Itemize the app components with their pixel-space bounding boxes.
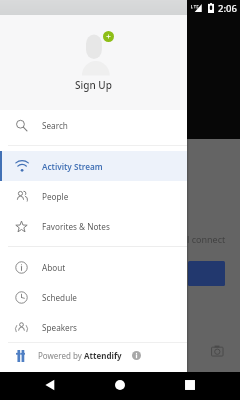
staticText: Powered by bbox=[38, 350, 84, 361]
button[interactable]: About bbox=[0, 252, 187, 282]
other: Info bbox=[132, 351, 141, 360]
staticText: Schedule bbox=[42, 292, 77, 303]
staticText: Activity Stream bbox=[42, 161, 103, 172]
staticText: People bbox=[42, 191, 69, 202]
button[interactable]: Schedule bbox=[0, 282, 187, 312]
button[interactable]: Sign Up bbox=[103, 31, 114, 42]
button[interactable]: People bbox=[0, 181, 187, 211]
button[interactable]: Speakers bbox=[0, 312, 187, 342]
staticText: About bbox=[42, 262, 66, 273]
button[interactable]: Camera bbox=[211, 345, 225, 357]
staticText: l connect bbox=[187, 233, 226, 245]
staticText: Sign Up bbox=[75, 78, 112, 92]
staticText: 2:06 bbox=[218, 2, 237, 15]
staticText: Favorites & Notes bbox=[42, 221, 110, 232]
button[interactable]: Favorites & Notes bbox=[0, 211, 187, 241]
button[interactable]: Search bbox=[0, 110, 187, 140]
button[interactable]: Activity Stream bbox=[0, 151, 187, 181]
staticText: Attendify bbox=[84, 350, 122, 361]
button[interactable]: Back bbox=[43, 378, 57, 392]
button[interactable]: Home bbox=[113, 378, 127, 392]
button[interactable]: Recents bbox=[183, 378, 197, 392]
staticText: Search bbox=[42, 120, 68, 131]
staticText: Speakers bbox=[42, 322, 78, 333]
button[interactable]: Powered by bbox=[0, 343, 187, 368]
